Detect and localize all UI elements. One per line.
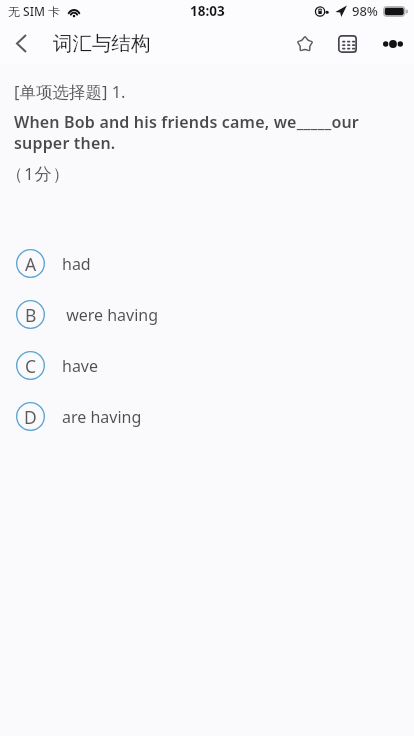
staticText: （1分） — [6, 162, 71, 185]
staticText: C — [25, 354, 37, 378]
staticText: When Bob and his friends came, we_____ou… — [14, 111, 388, 154]
button[interactable]: C — [0, 340, 414, 391]
button[interactable]: Favorite — [285, 24, 324, 63]
button[interactable]: A — [0, 238, 414, 289]
staticText: B — [25, 303, 37, 327]
staticText: 98% — [352, 2, 378, 20]
staticText: are having — [62, 406, 142, 428]
button[interactable]: B — [0, 289, 414, 340]
staticText: were having — [62, 304, 159, 326]
staticText: A — [25, 252, 37, 276]
staticText: had — [62, 253, 91, 275]
staticText: 无 SIM 卡 — [8, 3, 61, 19]
staticText: have — [62, 355, 99, 377]
staticText: 词汇与结构 — [53, 31, 151, 56]
button[interactable]: Question list — [328, 24, 367, 63]
button[interactable]: Back — [0, 22, 42, 64]
staticText: [单项选择题] 1. — [14, 80, 126, 103]
staticText: D — [24, 405, 37, 429]
button[interactable]: More options — [373, 24, 412, 63]
staticText: 18:03 — [190, 2, 225, 20]
button[interactable]: D — [0, 391, 414, 442]
